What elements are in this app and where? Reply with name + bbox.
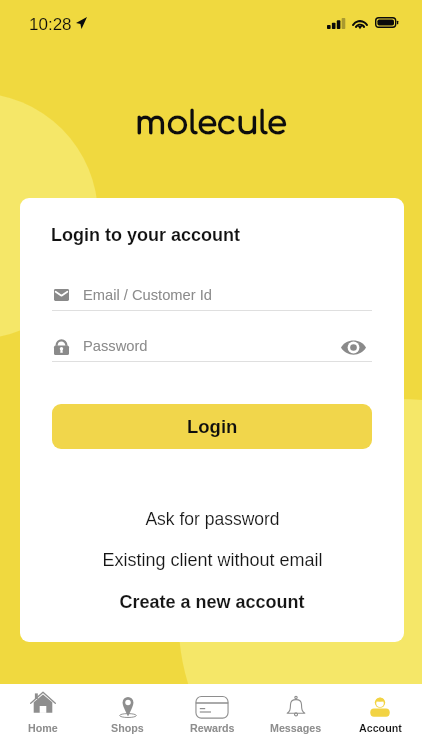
staticText: Account (359, 722, 402, 734)
button[interactable]: Account (338, 684, 422, 750)
staticText: Ask for password (145, 509, 280, 529)
staticText: Login (187, 416, 238, 437)
button[interactable]: Login (52, 404, 372, 449)
button[interactable]: Existing client without email (20, 547, 404, 573)
staticText: Create a new account (119, 592, 305, 612)
button[interactable]: Messages (254, 684, 338, 750)
staticText: Home (28, 722, 58, 734)
button[interactable]: Show password (337, 331, 369, 363)
button[interactable]: Home (0, 684, 85, 750)
button[interactable]: Rewards (170, 684, 254, 750)
staticText: Password (83, 338, 148, 354)
button[interactable]: Shops (85, 684, 170, 750)
staticText: Login to your account (51, 225, 240, 245)
staticText: Messages (270, 722, 322, 734)
staticText: Existing client without email (102, 550, 323, 570)
button[interactable]: Create a new account (20, 589, 404, 615)
staticText: Shops (111, 722, 144, 734)
staticText: 10:28 (29, 15, 72, 34)
staticText: Email / Customer Id (83, 287, 212, 303)
staticText: Rewards (190, 722, 235, 734)
staticText: molecule (135, 105, 288, 142)
button[interactable]: Ask for password (20, 506, 404, 532)
